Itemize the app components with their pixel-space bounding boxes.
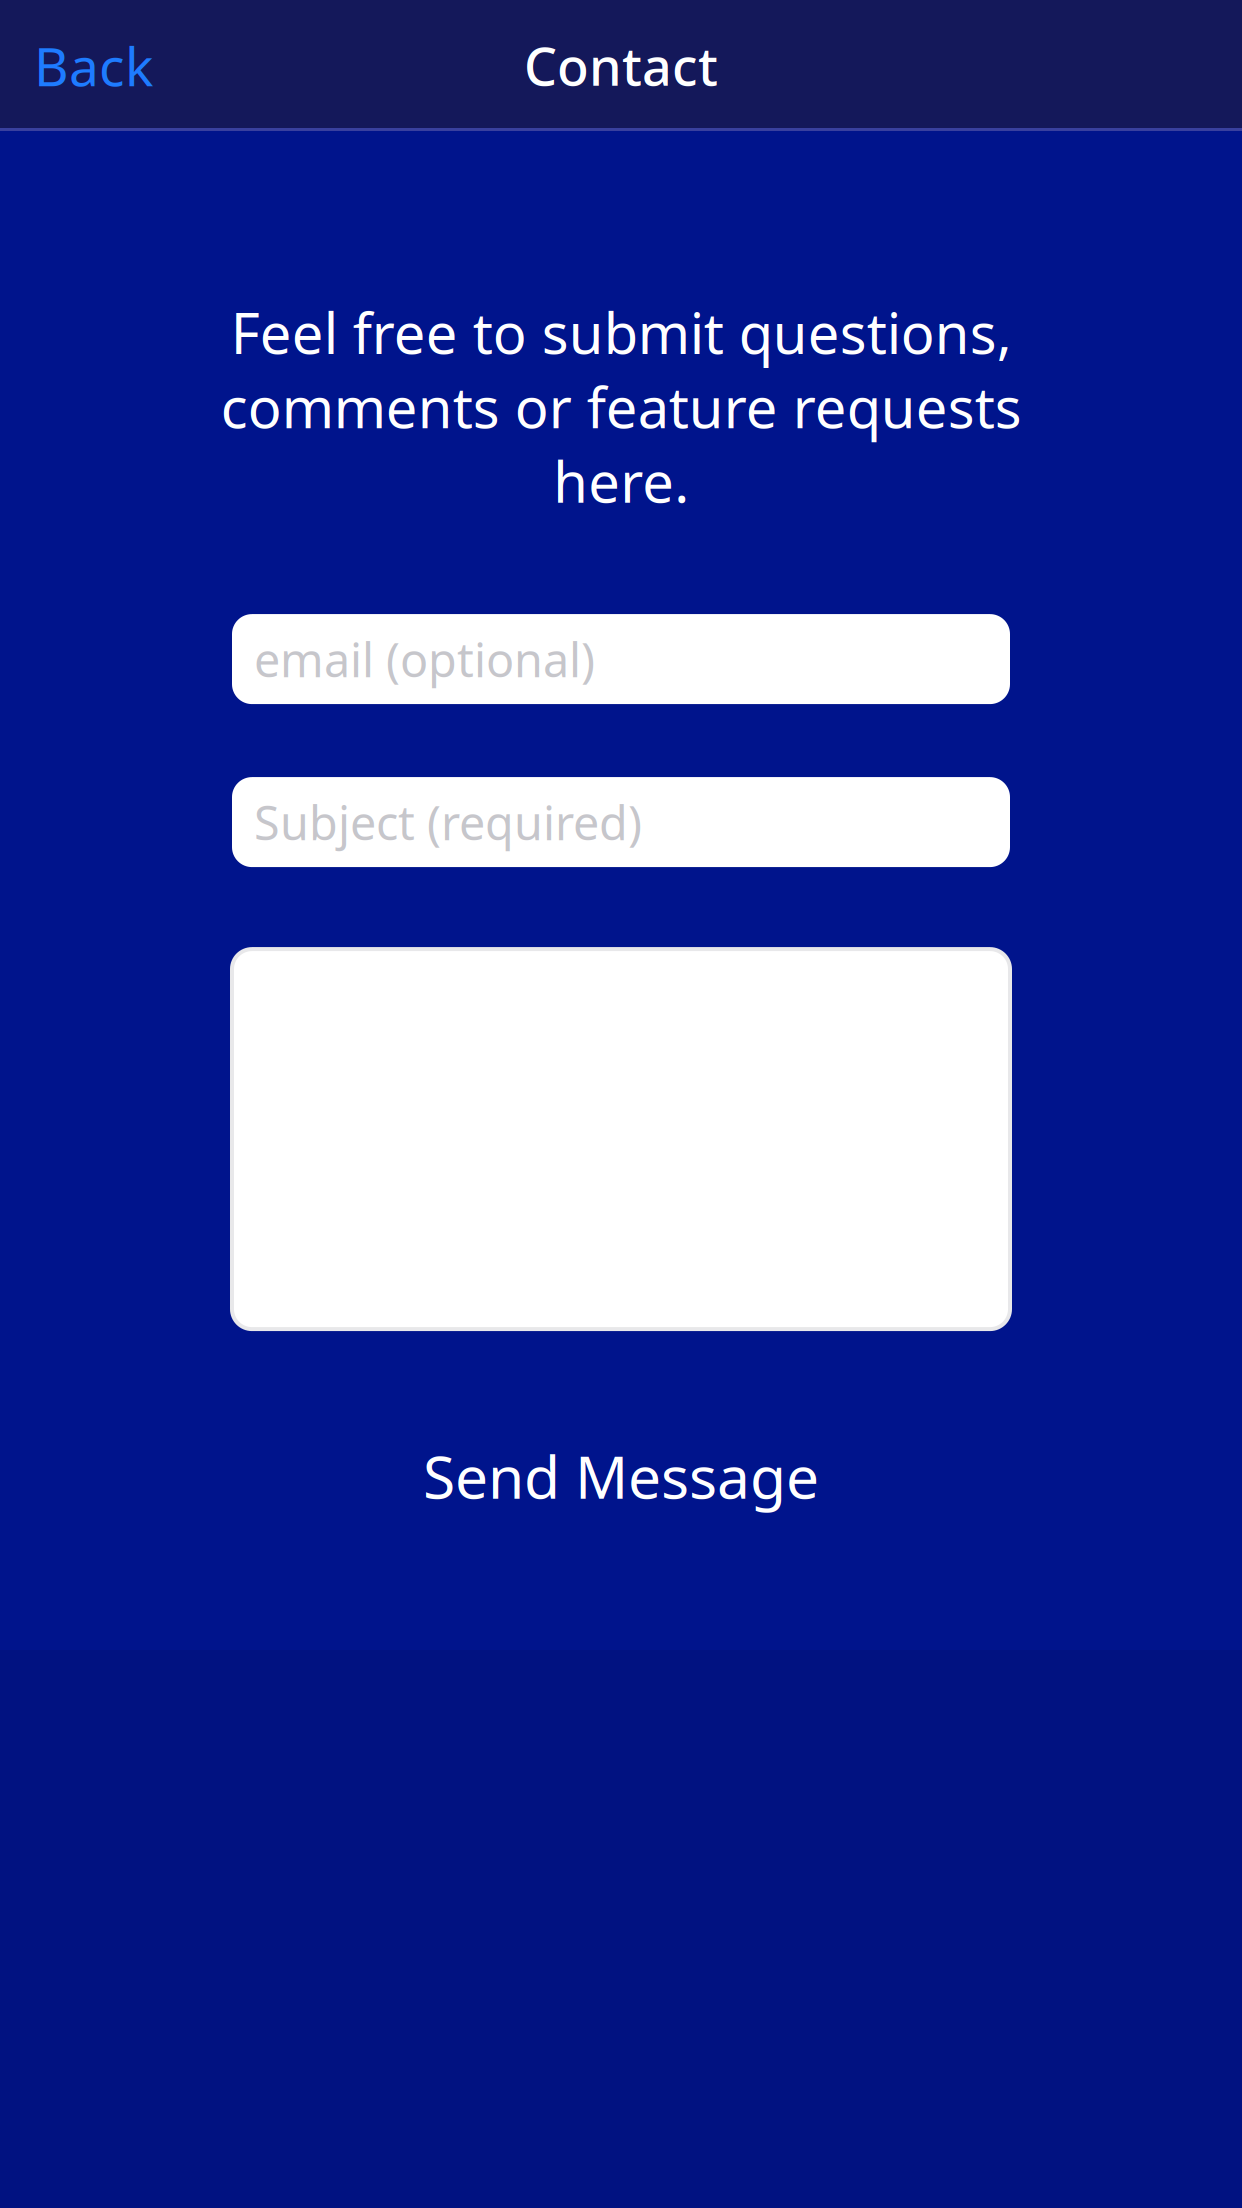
- staticText: email (optional): [254, 628, 595, 690]
- staticText: Send Message: [423, 1437, 819, 1515]
- staticText: Back: [34, 30, 153, 101]
- button[interactable]: Message: [232, 949, 1010, 1329]
- staticText: Contact: [524, 31, 718, 100]
- staticText: Feel free to submit questions, comments …: [220, 295, 1021, 518]
- button[interactable]: Subject (required): [232, 777, 1010, 867]
- staticText: Subject (required): [254, 791, 642, 853]
- button[interactable]: Send Message: [232, 1433, 1010, 1519]
- button[interactable]: Back: [0, 12, 177, 119]
- button[interactable]: email (optional): [232, 614, 1010, 704]
